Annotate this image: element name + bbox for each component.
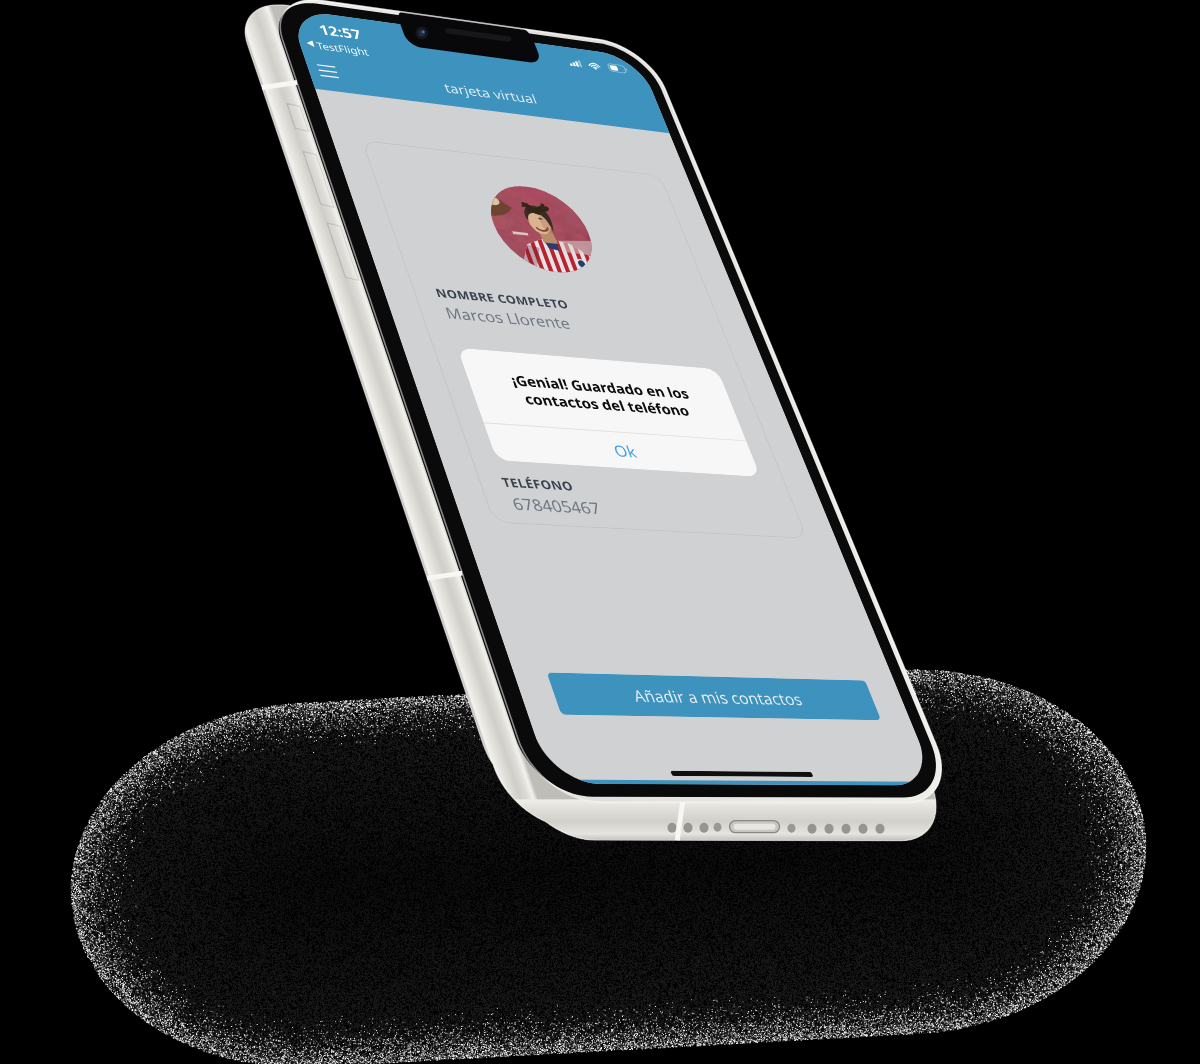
button[interactable]: Añadir a mis contactos bbox=[32, 737, 358, 778]
button[interactable] bbox=[31, 158, 358, 586]
staticText: Añadir a mis contactos bbox=[110, 747, 281, 769]
